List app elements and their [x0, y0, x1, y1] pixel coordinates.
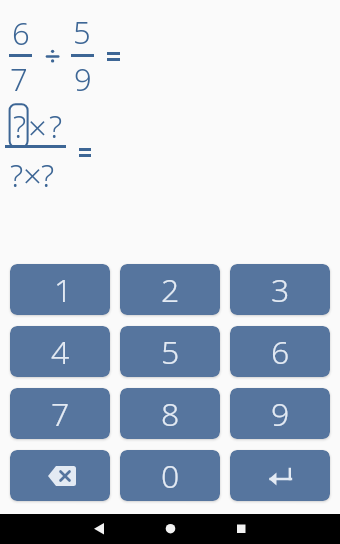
- button[interactable]: 3: [230, 264, 330, 315]
- staticText: 2: [161, 268, 180, 312]
- staticText: 6: [12, 12, 30, 54]
- staticText: 1: [54, 268, 73, 312]
- staticText: 7: [10, 58, 28, 100]
- staticText: 0: [161, 454, 180, 498]
- staticText: 9: [74, 58, 92, 100]
- staticText: 3: [271, 268, 290, 312]
- staticText: ?: [41, 154, 55, 196]
- button[interactable]: 2: [120, 264, 220, 315]
- staticText: 8: [161, 392, 180, 436]
- button[interactable]: [75, 514, 135, 544]
- button[interactable]: [10, 450, 110, 501]
- button[interactable]: 1: [10, 264, 110, 315]
- staticText: 7: [51, 392, 70, 436]
- button[interactable]: 5: [120, 326, 220, 377]
- button[interactable]: 8: [120, 388, 220, 439]
- button[interactable]: 7: [10, 388, 110, 439]
- button[interactable]: [140, 514, 200, 544]
- button[interactable]: [212, 514, 272, 544]
- button[interactable]: 6: [230, 326, 330, 377]
- staticText: 6: [271, 330, 290, 374]
- staticText: 9: [271, 392, 290, 436]
- button[interactable]: [230, 450, 330, 501]
- staticText: 5: [161, 330, 180, 374]
- staticText: ×: [28, 105, 47, 150]
- button[interactable]: 4: [10, 326, 110, 377]
- staticText: ?: [49, 105, 63, 147]
- button[interactable]: 0: [120, 450, 220, 501]
- button[interactable]: 9: [230, 388, 330, 439]
- staticText: ?: [10, 154, 24, 196]
- staticText: ?: [13, 105, 27, 147]
- staticText: ×: [23, 153, 42, 198]
- staticText: 4: [51, 330, 70, 374]
- staticText: 5: [73, 11, 91, 53]
